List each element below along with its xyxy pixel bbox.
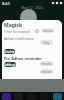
- staticText: minutes: [41, 70, 53, 74]
- button[interactable]: Disable: [4, 49, 15, 54]
- button[interactable]: minutes: [40, 69, 53, 74]
- button[interactable]: minutes: [40, 61, 53, 66]
- staticText: Disable: [4, 50, 15, 54]
- staticText: Time formatted: [4, 29, 30, 34]
- staticText: Settings: [4, 63, 16, 67]
- button[interactable]: Info: [35, 29, 39, 33]
- staticText: 9:41: [2, 1, 10, 6]
- staticText: Pre Adhan reminder: [4, 56, 43, 61]
- button[interactable]: App: [53, 93, 62, 100]
- staticText: minutes: [42, 29, 54, 33]
- staticText: Magisk: [4, 22, 22, 29]
- button[interactable]: Settings: [4, 62, 16, 67]
- button[interactable]: Ring: [40, 40, 53, 45]
- button[interactable]: minutes: [42, 28, 54, 33]
- staticText: Mar 12, 2024: [21, 5, 43, 10]
- staticText: Adhan notification: [4, 36, 35, 41]
- staticText: minutes: [41, 62, 53, 66]
- button[interactable]: App: [2, 93, 11, 100]
- staticText: Ring: [43, 41, 50, 45]
